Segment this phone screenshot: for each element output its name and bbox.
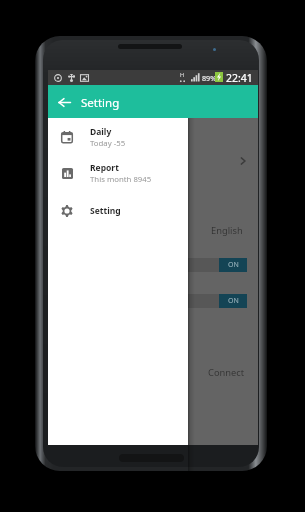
staticText: Daily — [90, 126, 112, 138]
button[interactable]: More — [237, 155, 249, 167]
staticText: 22:41 — [226, 71, 253, 85]
staticText: ON — [228, 296, 239, 306]
staticText: Setting — [81, 95, 120, 111]
button[interactable]: Daily — [48, 120, 188, 154]
staticText: Today -55 — [90, 138, 126, 149]
staticText: Report — [90, 162, 119, 174]
staticText: ON — [228, 260, 239, 270]
staticText: English — [211, 224, 243, 237]
staticText: Setting — [90, 205, 121, 217]
button[interactable]: ON — [219, 294, 247, 308]
staticText: This month 8945 — [90, 174, 152, 185]
staticText: Connect — [208, 366, 245, 379]
button[interactable]: Report — [48, 155, 188, 191]
button[interactable]: ON — [219, 258, 247, 272]
staticText: 89% — [202, 73, 217, 83]
button[interactable]: Setting — [48, 196, 188, 226]
button[interactable]: Back — [56, 94, 72, 110]
staticText: ∙∙ — [179, 78, 186, 84]
staticText: H — [180, 71, 185, 78]
